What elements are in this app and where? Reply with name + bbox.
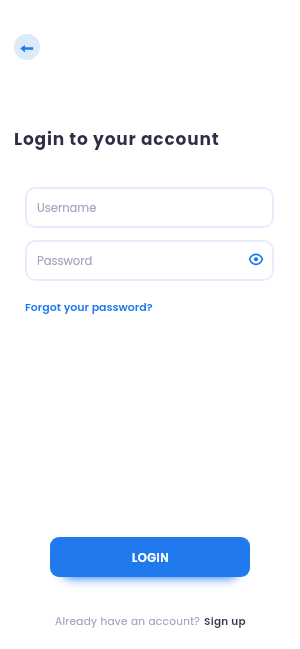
button[interactable]: Sign up [204,614,247,629]
button[interactable]: Username [25,187,274,228]
staticText: Password [37,253,93,269]
staticText: Login to your account [14,127,220,151]
button[interactable]: Show password [244,247,268,271]
button[interactable]: Forgot your password? [25,299,153,314]
staticText: LOGIN [132,550,170,566]
button[interactable]: Back [14,34,40,60]
button[interactable]: LOGIN [50,537,250,577]
button[interactable]: Password [25,240,274,281]
staticText: Already have an account? [55,614,204,629]
staticText: Username [37,200,97,216]
